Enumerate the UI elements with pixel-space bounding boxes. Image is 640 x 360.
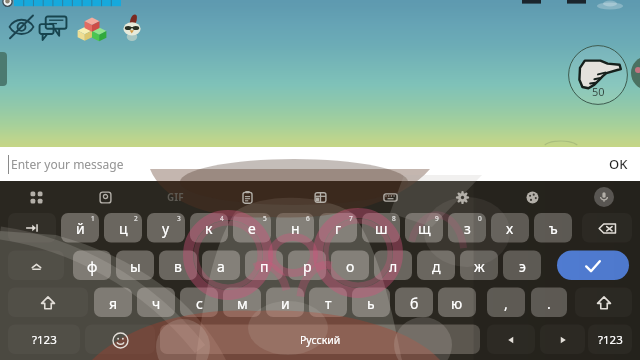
button[interactable]: й <box>61 213 99 243</box>
staticText: б <box>410 294 419 313</box>
button[interactable]: п <box>245 251 283 281</box>
button[interactable]: м <box>223 288 261 318</box>
button[interactable]: ч <box>137 288 175 318</box>
button[interactable]: ◀ <box>487 325 535 355</box>
button[interactable]: ▶ <box>540 325 585 355</box>
staticText: к <box>205 219 213 238</box>
button[interactable]: ъ <box>534 213 572 243</box>
button[interactable]: х <box>491 213 529 243</box>
button[interactable]: Русский <box>160 325 480 355</box>
staticText: OK <box>609 155 628 173</box>
button[interactable]: щ <box>405 213 443 243</box>
staticText: 4 <box>220 214 224 223</box>
staticText: 5 <box>263 214 267 223</box>
button[interactable]: р <box>288 251 326 281</box>
button[interactable]: . <box>531 288 567 318</box>
staticText: н <box>291 219 300 238</box>
button[interactable]: б <box>395 288 433 318</box>
button[interactable]: ш <box>362 213 400 243</box>
button[interactable]: Voice input <box>588 183 620 211</box>
button[interactable]: л <box>374 251 412 281</box>
button[interactable]: ф <box>73 251 111 281</box>
button[interactable]: →| <box>8 213 56 243</box>
button[interactable]: с <box>180 288 218 318</box>
button[interactable]: а <box>202 251 240 281</box>
staticText: ?123 <box>598 332 623 348</box>
button[interactable]: у <box>147 213 185 243</box>
staticText: й <box>76 219 85 238</box>
staticText: 7 <box>349 214 353 223</box>
button[interactable]: ⇧ <box>8 288 88 318</box>
button[interactable]: ⇧ <box>575 288 632 318</box>
button[interactable]: в <box>159 251 197 281</box>
staticText: м <box>237 294 248 313</box>
button[interactable]: ⌫ <box>582 213 632 243</box>
button[interactable]: Enter your message <box>0 147 640 181</box>
staticText: л <box>389 257 398 276</box>
button[interactable]: т <box>309 288 347 318</box>
staticText: 6 <box>306 214 310 223</box>
button[interactable]: ☺ <box>85 325 155 355</box>
staticText: Русский <box>300 333 341 347</box>
staticText: т <box>325 294 332 313</box>
button[interactable]: о <box>331 251 369 281</box>
staticText: Enter your message <box>11 156 124 172</box>
button[interactable]: э <box>503 251 541 281</box>
button[interactable]: г <box>319 213 357 243</box>
staticText: в <box>174 257 182 276</box>
button[interactable]: з <box>448 213 486 243</box>
staticText: с <box>196 294 203 313</box>
staticText: ф <box>87 257 98 276</box>
button[interactable]: Apps <box>20 183 52 211</box>
staticText: 1 <box>91 214 95 223</box>
button[interactable]: ж <box>460 251 498 281</box>
button[interactable]: и <box>266 288 304 318</box>
button[interactable]: ⌃ <box>8 251 64 281</box>
button[interactable]: Settings <box>446 183 478 211</box>
button[interactable]: Blocks <box>77 14 107 42</box>
staticText: ?123 <box>32 332 57 348</box>
staticText: ш <box>375 219 388 238</box>
button[interactable]: ✓ <box>557 251 629 281</box>
button[interactable]: Stickers <box>89 183 121 211</box>
button[interactable]: , <box>487 288 525 318</box>
button[interactable]: е <box>233 213 271 243</box>
button[interactable]: д <box>417 251 455 281</box>
staticText: 2 <box>134 214 138 223</box>
staticText: р <box>303 257 312 276</box>
staticText: з <box>464 219 471 238</box>
button[interactable]: Chat <box>39 15 67 41</box>
staticText: щ <box>418 219 431 238</box>
button[interactable]: Point <box>568 45 628 105</box>
button[interactable]: ?123 <box>8 325 80 355</box>
button[interactable]: к <box>190 213 228 243</box>
staticText: 9 <box>435 214 439 223</box>
button[interactable]: Themes <box>516 183 548 211</box>
staticText: . <box>547 294 551 313</box>
staticText: 8 <box>392 214 396 223</box>
button[interactable]: ь <box>352 288 390 318</box>
button[interactable]: Keyboard layout <box>374 183 406 211</box>
button[interactable]: я <box>94 288 132 318</box>
staticText: д <box>432 257 441 276</box>
staticText: п <box>260 257 269 276</box>
staticText: ц <box>119 219 128 238</box>
button[interactable]: ю <box>438 288 476 318</box>
staticText: ъ <box>549 219 558 238</box>
button[interactable]: Hide <box>9 17 34 36</box>
button[interactable]: ц <box>104 213 142 243</box>
staticText: ь <box>367 294 375 313</box>
button[interactable]: ?123 <box>588 325 632 355</box>
button[interactable]: ы <box>116 251 154 281</box>
button[interactable]: Translate <box>304 183 336 211</box>
button[interactable]: GIF <box>159 183 191 211</box>
button[interactable]: Clipboard <box>231 183 263 211</box>
staticText: 3 <box>177 214 181 223</box>
staticText: ж <box>474 257 485 276</box>
button[interactable]: н <box>276 213 314 243</box>
staticText: и <box>281 294 290 313</box>
button[interactable]: Profile <box>120 13 144 41</box>
button[interactable]: OK <box>609 147 628 181</box>
staticText: GIF <box>167 190 184 204</box>
staticText: г <box>335 219 342 238</box>
